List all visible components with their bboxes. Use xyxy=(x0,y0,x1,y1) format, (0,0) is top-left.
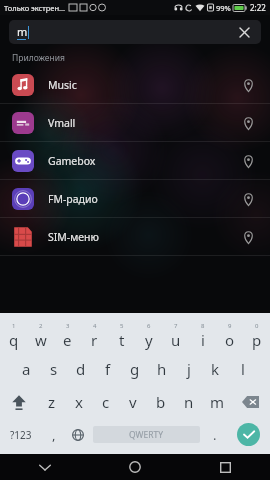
button[interactable]: b xyxy=(147,385,175,418)
button[interactable]: Pin Gamebox xyxy=(238,151,258,171)
staticText: 1 xyxy=(12,322,16,330)
staticText: m xyxy=(210,392,225,412)
button[interactable]: z xyxy=(38,385,65,418)
staticText: ?123 xyxy=(10,428,32,442)
button[interactable]: Pin SIM-меню xyxy=(238,227,258,247)
staticText: w xyxy=(35,330,47,350)
button[interactable]: Pin FM-радио xyxy=(238,189,258,209)
button[interactable]: Home xyxy=(90,454,180,480)
button[interactable]: 8 xyxy=(189,319,216,352)
staticText: l xyxy=(241,359,245,379)
staticText: c xyxy=(102,392,110,412)
button[interactable]: 3 xyxy=(54,319,81,352)
button[interactable]: QWERTY xyxy=(93,426,200,443)
staticText: 2 xyxy=(39,322,43,330)
staticText: a xyxy=(22,359,31,379)
button[interactable]: f xyxy=(94,352,121,385)
staticText: t xyxy=(119,330,125,350)
button[interactable]: ?123 xyxy=(0,418,42,451)
button[interactable]: h xyxy=(148,352,175,385)
button[interactable]: 6 xyxy=(135,319,162,352)
staticText: 99% xyxy=(216,3,231,13)
staticText: i xyxy=(201,330,205,350)
button[interactable]: c xyxy=(92,385,119,418)
button[interactable]: Clear search xyxy=(235,23,253,41)
staticText: f xyxy=(105,359,111,379)
staticText: p xyxy=(252,330,262,350)
staticText: 7 xyxy=(174,322,178,330)
button[interactable]: Enter xyxy=(227,418,270,451)
staticText: QWERTY xyxy=(129,429,164,441)
staticText: m xyxy=(17,24,28,39)
staticText: j xyxy=(187,359,191,379)
button[interactable]: Change language xyxy=(66,418,90,451)
staticText: u xyxy=(171,330,181,350)
button[interactable]: Pin Vmall xyxy=(238,113,258,133)
staticText: e xyxy=(63,330,72,350)
staticText: Приложения xyxy=(12,52,65,64)
staticText: Music xyxy=(48,78,77,92)
staticText: b xyxy=(156,392,166,412)
staticText: d xyxy=(76,359,86,379)
button[interactable]: 9 xyxy=(216,319,243,352)
button[interactable]: k xyxy=(202,352,229,385)
staticText: 6 xyxy=(147,322,151,330)
button[interactable]: j xyxy=(175,352,202,385)
staticText: 2:22 xyxy=(250,2,266,13)
staticText: v xyxy=(129,392,137,412)
button[interactable]: 4 xyxy=(81,319,108,352)
button[interactable]: Back xyxy=(0,454,90,480)
button[interactable]: x xyxy=(65,385,92,418)
staticText: FM-радио xyxy=(48,192,98,206)
button[interactable]: n xyxy=(175,385,203,418)
button[interactable]: 5 xyxy=(108,319,135,352)
button[interactable]: Gamebox xyxy=(0,142,270,179)
staticText: r xyxy=(91,330,98,350)
button[interactable]: 2 xyxy=(27,319,54,352)
staticText: z xyxy=(48,392,56,412)
staticText: g xyxy=(130,359,140,379)
button[interactable]: m xyxy=(9,20,261,44)
staticText: Gamebox xyxy=(48,154,96,168)
staticText: 3 xyxy=(66,322,70,330)
staticText: n xyxy=(184,392,194,412)
button[interactable]: Shift xyxy=(0,385,38,418)
staticText: k xyxy=(211,359,220,379)
button[interactable]: v xyxy=(119,385,147,418)
button[interactable]: Vmall xyxy=(0,104,270,141)
staticText: y xyxy=(145,330,153,350)
staticText: SIM-меню xyxy=(48,230,99,244)
staticText: q xyxy=(9,330,19,350)
staticText: 8 xyxy=(201,322,205,330)
staticText: . xyxy=(213,426,217,444)
button[interactable]: Backspace xyxy=(231,385,270,418)
staticText: x xyxy=(75,392,83,412)
staticText: s xyxy=(50,359,58,379)
button[interactable]: Music xyxy=(0,66,270,103)
staticText: , xyxy=(52,426,56,444)
staticText: 4 xyxy=(93,322,97,330)
button[interactable]: , xyxy=(42,418,66,451)
staticText: Vmall xyxy=(48,116,76,130)
button[interactable]: m xyxy=(203,385,231,418)
button[interactable]: d xyxy=(67,352,94,385)
button[interactable]: a xyxy=(13,352,40,385)
staticText: h xyxy=(157,359,167,379)
button[interactable]: g xyxy=(121,352,148,385)
button[interactable]: s xyxy=(40,352,67,385)
button[interactable]: SIM-меню xyxy=(0,218,270,255)
staticText: o xyxy=(225,330,235,350)
button[interactable]: 0 xyxy=(243,319,270,352)
staticText: 0 xyxy=(255,322,259,330)
button[interactable]: Recent apps xyxy=(180,454,270,480)
button[interactable]: 7 xyxy=(162,319,189,352)
button[interactable]: FM-радио xyxy=(0,180,270,217)
button[interactable]: 1 xyxy=(0,319,27,352)
button[interactable]: Pin Music xyxy=(238,75,258,95)
staticText: 5 xyxy=(120,322,124,330)
button[interactable]: . xyxy=(203,418,227,451)
staticText: Только экстрен... xyxy=(4,3,66,13)
button[interactable]: l xyxy=(229,352,256,385)
staticText: 9 xyxy=(228,322,232,330)
